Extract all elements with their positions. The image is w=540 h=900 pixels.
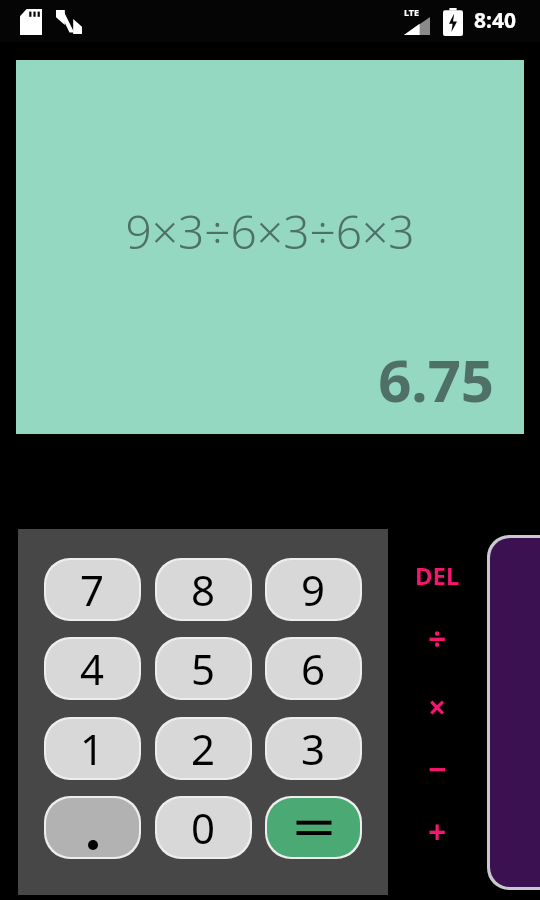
staticText: − — [428, 747, 447, 791]
button[interactable]: 9 — [265, 558, 362, 621]
staticText: 6 — [301, 640, 326, 697]
staticText: 2 — [191, 720, 216, 777]
staticText: 5 — [191, 640, 216, 697]
button[interactable]: 8 — [155, 558, 252, 621]
button[interactable]: 0 — [155, 796, 252, 859]
button[interactable] — [44, 796, 141, 859]
button[interactable]: × — [400, 680, 474, 734]
staticText: 0 — [191, 799, 216, 856]
button[interactable]: 2 — [155, 717, 252, 780]
button[interactable]: 9×3÷6×3÷6×3 — [16, 60, 524, 434]
staticText: ÷ — [428, 617, 447, 661]
button[interactable]: DEL — [400, 552, 474, 598]
button[interactable]: + — [400, 805, 474, 859]
staticText: 1 — [80, 720, 105, 777]
button[interactable]: 4 — [44, 637, 141, 700]
button[interactable]: 3 — [265, 717, 362, 780]
staticText: 9×3÷6×3÷6×3 — [16, 200, 524, 270]
staticText: 8:40 — [474, 6, 516, 35]
button[interactable]: − — [400, 742, 474, 796]
staticText: DEL — [415, 559, 460, 592]
staticText: × — [428, 685, 447, 729]
staticText: 9 — [301, 561, 326, 618]
staticText: LTE — [404, 6, 420, 18]
button[interactable] — [265, 796, 362, 859]
button[interactable]: More options — [487, 535, 540, 890]
staticText: + — [428, 810, 447, 854]
button[interactable]: 6 — [265, 637, 362, 700]
button[interactable]: 5 — [155, 637, 252, 700]
staticText: 4 — [80, 640, 105, 697]
button[interactable]: 1 — [44, 717, 141, 780]
staticText: 8 — [191, 561, 216, 618]
button[interactable]: ÷ — [400, 612, 474, 666]
button[interactable]: 7 — [44, 558, 141, 621]
staticText: 3 — [301, 720, 326, 777]
staticText: 6.75 — [16, 340, 494, 420]
staticText: 7 — [80, 561, 105, 618]
